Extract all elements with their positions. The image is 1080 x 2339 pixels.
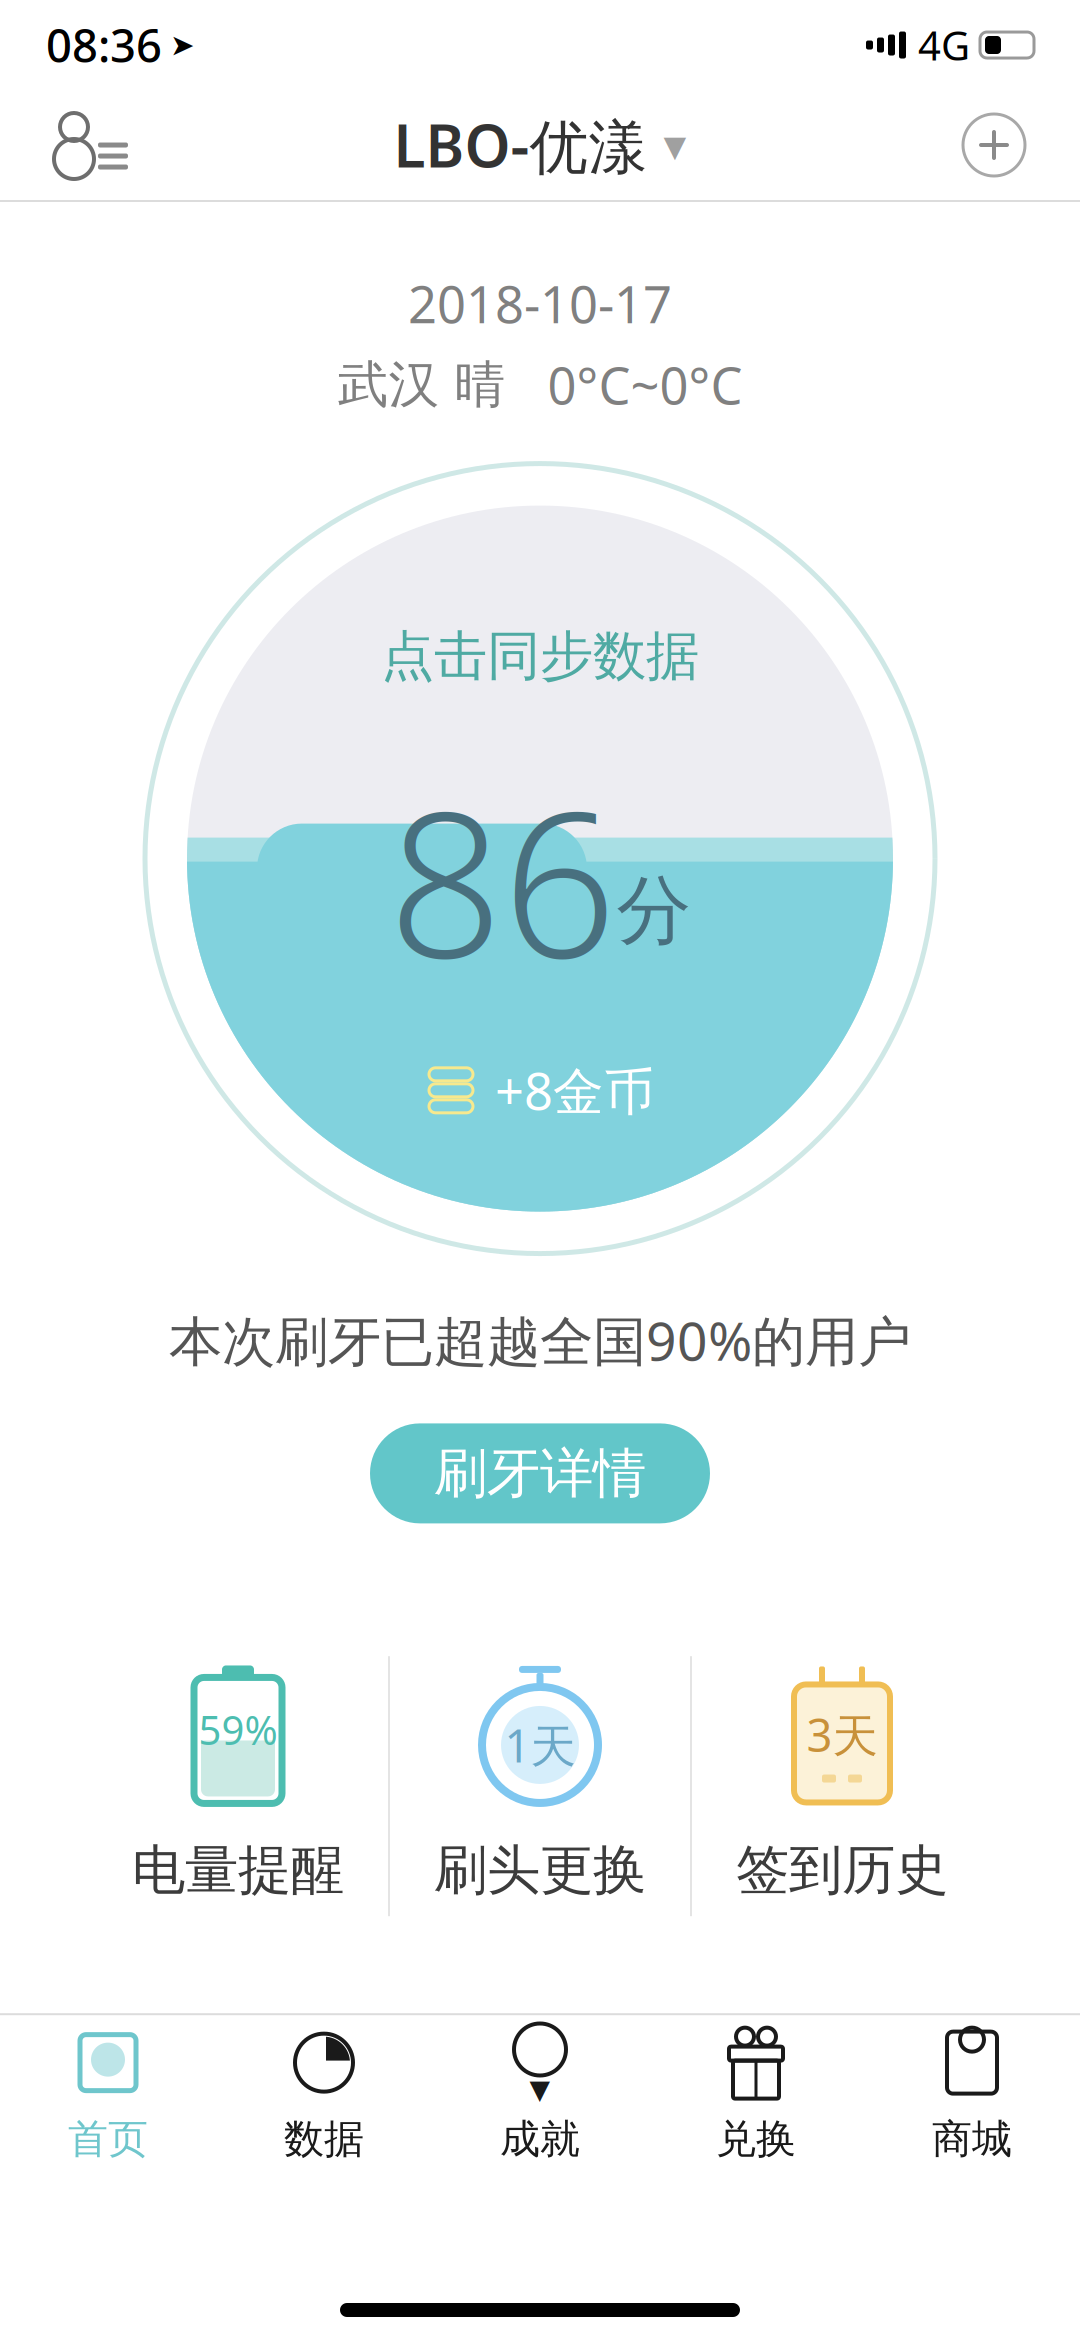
- button[interactable]: 刷牙详情: [370, 1423, 710, 1523]
- staticText: 刷头更换: [434, 1837, 646, 1903]
- staticText: ▼: [529, 2074, 550, 2105]
- staticText: 数据: [284, 2115, 364, 2164]
- button[interactable]: 59%: [88, 1651, 388, 1921]
- staticText: ▾: [663, 119, 686, 171]
- staticText: ➤: [170, 28, 195, 62]
- staticText: 86: [388, 747, 616, 1013]
- staticText: 3天: [806, 1704, 877, 1764]
- staticText: 本次刷牙已超越全国90%的用户: [169, 1305, 911, 1375]
- button[interactable]: 1天: [390, 1651, 690, 1921]
- staticText: 59%: [198, 1703, 277, 1756]
- button[interactable]: 点击同步数据: [140, 459, 940, 1259]
- staticText: 武汉 晴: [337, 354, 505, 416]
- button[interactable]: 3天: [692, 1651, 992, 1921]
- staticText: 兑换: [716, 2115, 796, 2164]
- staticText: 4G: [918, 18, 970, 71]
- staticText: 商城: [932, 2115, 1012, 2164]
- button[interactable]: 首页: [0, 2020, 216, 2170]
- button[interactable]: ▼: [432, 2020, 648, 2170]
- staticText: 2018-10-17: [408, 270, 672, 337]
- button[interactable]: 添加: [944, 95, 1044, 195]
- staticText: 1天: [504, 1715, 575, 1775]
- staticText: 签到历史: [736, 1837, 948, 1903]
- staticText: 刷牙详情: [434, 1441, 646, 1506]
- staticText: 成就: [500, 2115, 580, 2164]
- staticText: 0°C~0°C: [547, 351, 742, 419]
- button[interactable]: LBO-优漾: [373, 96, 706, 194]
- staticText: 08:36: [46, 15, 162, 75]
- staticText: LBO-优漾: [393, 106, 647, 184]
- staticText: 首页: [68, 2115, 148, 2164]
- staticText: 点击同步数据: [381, 624, 699, 689]
- button[interactable]: 账号: [36, 95, 146, 195]
- button[interactable]: 商城: [864, 2020, 1080, 2170]
- button[interactable]: 数据: [216, 2020, 432, 2170]
- button[interactable]: 兑换: [648, 2020, 864, 2170]
- staticText: 电量提醒: [132, 1837, 344, 1903]
- staticText: +8金币: [495, 1057, 655, 1124]
- staticText: 分: [616, 865, 691, 957]
